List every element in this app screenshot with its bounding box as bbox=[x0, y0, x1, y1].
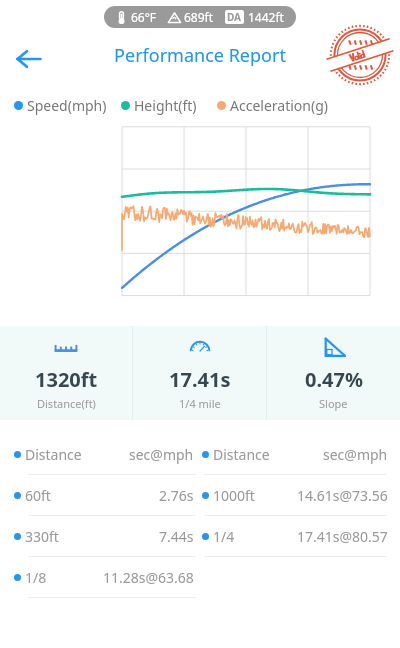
staticText: 14.61s@73.56 bbox=[297, 486, 388, 505]
staticText: 689ft bbox=[184, 9, 214, 25]
button[interactable]: 1320ft bbox=[0, 326, 132, 420]
button[interactable]: Back bbox=[6, 36, 52, 82]
staticText: 11.28s@63.68 bbox=[103, 568, 194, 587]
staticText: 7.44s bbox=[159, 527, 194, 546]
staticText: 17.41s@80.57 bbox=[297, 527, 388, 546]
button[interactable]: Acceleration(g) bbox=[217, 96, 328, 115]
staticText: 60ft bbox=[25, 486, 51, 505]
staticText: 17.41s bbox=[169, 366, 231, 393]
button[interactable]: Valid stamp bbox=[324, 24, 396, 86]
staticText: 2.76s bbox=[159, 486, 194, 505]
button[interactable]: 1/8 bbox=[0, 557, 400, 597]
button[interactable]: 60ft bbox=[0, 475, 400, 515]
button[interactable]: 17.41s bbox=[133, 326, 266, 420]
staticText: Speed(mph) bbox=[27, 96, 107, 115]
staticText: Slope bbox=[319, 396, 348, 411]
staticText: Acceleration(g) bbox=[230, 96, 328, 115]
staticText: Distance bbox=[213, 445, 270, 464]
button[interactable]: 330ft bbox=[0, 516, 400, 556]
staticText: 330ft bbox=[25, 527, 59, 546]
button[interactable]: Height(ft) bbox=[121, 96, 197, 115]
staticText: 1/4 bbox=[213, 527, 235, 546]
button[interactable]: Speed(mph) bbox=[14, 96, 107, 115]
staticText: 1/4 mile bbox=[179, 396, 221, 411]
staticText: Height(ft) bbox=[134, 96, 197, 115]
staticText: 1442ft bbox=[248, 9, 284, 25]
staticText: Distance bbox=[25, 445, 82, 464]
staticText: DA bbox=[227, 10, 242, 24]
staticText: 1/8 bbox=[25, 568, 47, 587]
button[interactable]: 0.47% bbox=[267, 326, 400, 420]
staticText: 0.47% bbox=[305, 366, 363, 393]
staticText: Performance Report bbox=[114, 43, 286, 68]
button[interactable]: 66°F bbox=[104, 6, 296, 28]
staticText: 1000ft bbox=[213, 486, 255, 505]
staticText: 66°F bbox=[131, 9, 157, 25]
staticText: Distance(ft) bbox=[37, 396, 96, 411]
button[interactable]: Distance bbox=[0, 434, 400, 474]
staticText: sec@mph bbox=[323, 445, 388, 464]
staticText: sec@mph bbox=[129, 445, 194, 464]
staticText: 1320ft bbox=[35, 366, 98, 393]
